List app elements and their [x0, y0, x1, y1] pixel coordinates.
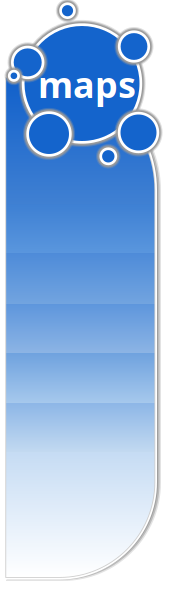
staticText: maps — [38, 60, 136, 108]
